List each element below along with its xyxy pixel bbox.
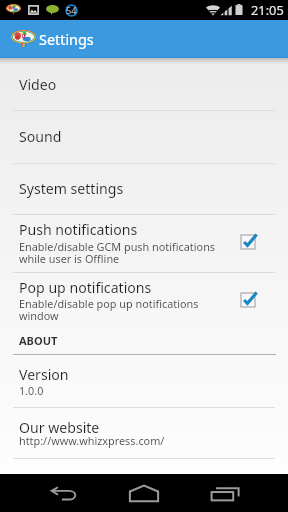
- button[interactable]: Back: [36, 474, 92, 512]
- button[interactable]: [0, 163, 288, 215]
- staticText: Sound: [19, 127, 62, 146]
- staticText: 21:05: [251, 1, 284, 18]
- staticText: Version: [19, 365, 69, 384]
- staticText: Pop up notifications: [19, 278, 152, 297]
- staticText: http://www.whizxpress.com/: [19, 433, 165, 448]
- staticText: Video: [19, 75, 57, 94]
- staticText: window: [19, 308, 59, 323]
- button[interactable]: [0, 407, 288, 459]
- staticText: Settings: [39, 30, 94, 50]
- button[interactable]: [0, 110, 288, 163]
- button[interactable]: [0, 58, 288, 110]
- staticText: while user is Offline: [19, 251, 120, 266]
- staticText: ABOUT: [19, 333, 58, 348]
- button[interactable]: [0, 214, 288, 272]
- staticText: 1.0.0: [19, 383, 44, 398]
- button[interactable]: Home: [116, 474, 172, 512]
- staticText: Enable/disable pop up notifications: [19, 296, 199, 311]
- staticText: 54: [66, 4, 77, 17]
- staticText: Our website: [19, 418, 100, 437]
- button[interactable]: Recent apps: [198, 474, 254, 512]
- button[interactable]: [0, 356, 288, 407]
- staticText: Enable/disable GCM push notifications: [19, 239, 216, 254]
- staticText: System settings: [19, 179, 124, 198]
- button[interactable]: Enabled: [235, 287, 261, 313]
- button[interactable]: Enabled: [235, 229, 261, 255]
- button[interactable]: [0, 272, 288, 330]
- staticText: Push notifications: [19, 220, 138, 239]
